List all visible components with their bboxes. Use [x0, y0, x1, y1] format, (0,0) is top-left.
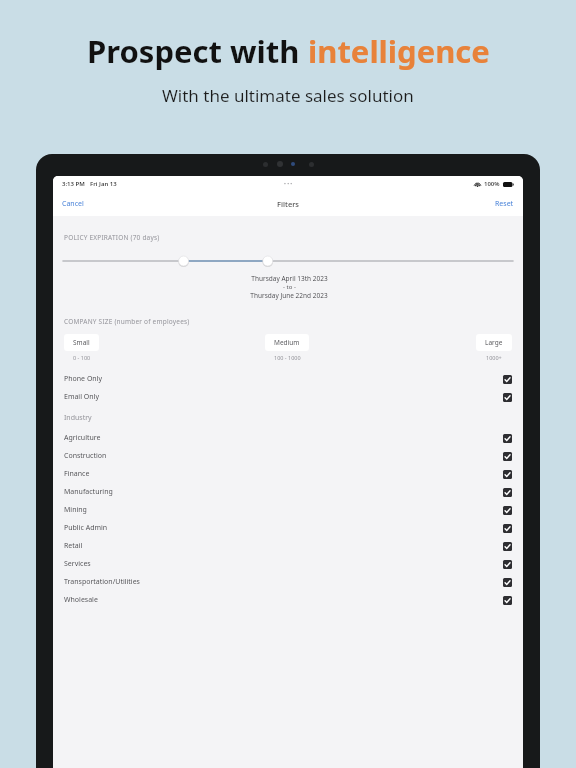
- button[interactable]: Transportation/Utilities: [53, 577, 523, 587]
- staticText: Medium: [274, 338, 300, 347]
- staticText: - to -: [283, 283, 296, 291]
- staticText: Finance: [64, 469, 90, 479]
- staticText: 100%: [484, 180, 500, 188]
- staticText: 0 - 100: [73, 354, 91, 361]
- button[interactable]: Agriculture: [53, 433, 523, 443]
- button[interactable]: Large: [476, 334, 512, 351]
- staticText: Retail: [64, 541, 83, 551]
- button[interactable]: Manufacturing: [53, 487, 523, 497]
- button[interactable]: Public Admin: [53, 523, 523, 533]
- staticText: Email Only: [64, 392, 99, 402]
- staticText: POLICY EXPIRATION (70 days): [64, 233, 160, 242]
- staticText: 100 - 1000: [274, 354, 301, 361]
- staticText: • • •: [284, 181, 293, 188]
- staticText: Small: [73, 338, 90, 347]
- staticText: Reset: [495, 199, 514, 209]
- staticText: Construction: [64, 451, 107, 461]
- staticText: COMPANY SIZE (number of employees): [64, 317, 190, 326]
- button[interactable]: Services: [53, 559, 523, 569]
- button[interactable]: Construction: [53, 451, 523, 461]
- staticText: With the ultimate sales solution: [162, 84, 414, 107]
- staticText: Large: [485, 338, 503, 347]
- staticText: Filters: [277, 199, 300, 209]
- staticText: Industry: [64, 413, 92, 423]
- staticText: Public Admin: [64, 523, 108, 533]
- staticText: Transportation/Utilities: [64, 577, 140, 587]
- staticText: Agriculture: [64, 433, 101, 443]
- button[interactable]: Small: [64, 334, 99, 351]
- button[interactable]: Medium: [265, 334, 309, 351]
- staticText: Phone Only: [64, 374, 103, 384]
- staticText: Manufacturing: [64, 487, 113, 497]
- staticText: 1000+: [486, 354, 502, 361]
- staticText: 3:13 PM: [62, 180, 85, 188]
- staticText: Thursday June 22nd 2023: [250, 291, 328, 300]
- staticText: Mining: [64, 505, 87, 515]
- staticText: Thursday April 13th 2023: [251, 274, 328, 283]
- staticText: intelligence: [308, 30, 490, 72]
- button[interactable]: Cancel: [53, 194, 93, 214]
- button[interactable]: Mining: [53, 505, 523, 515]
- staticText: Wholesale: [64, 595, 98, 605]
- button[interactable]: Reset: [486, 194, 523, 214]
- staticText: Services: [64, 559, 91, 569]
- button[interactable]: Retail: [53, 541, 523, 551]
- staticText: Cancel: [62, 199, 84, 209]
- staticText: Fri Jan 13: [90, 180, 117, 188]
- button[interactable]: Wholesale: [53, 595, 523, 605]
- button[interactable]: Email Only: [53, 392, 523, 402]
- button[interactable]: Phone Only: [53, 374, 523, 384]
- staticText: Prospect with: [87, 30, 308, 72]
- button[interactable]: Policy expiration date range slider: [53, 254, 523, 268]
- button[interactable]: Finance: [53, 469, 523, 479]
